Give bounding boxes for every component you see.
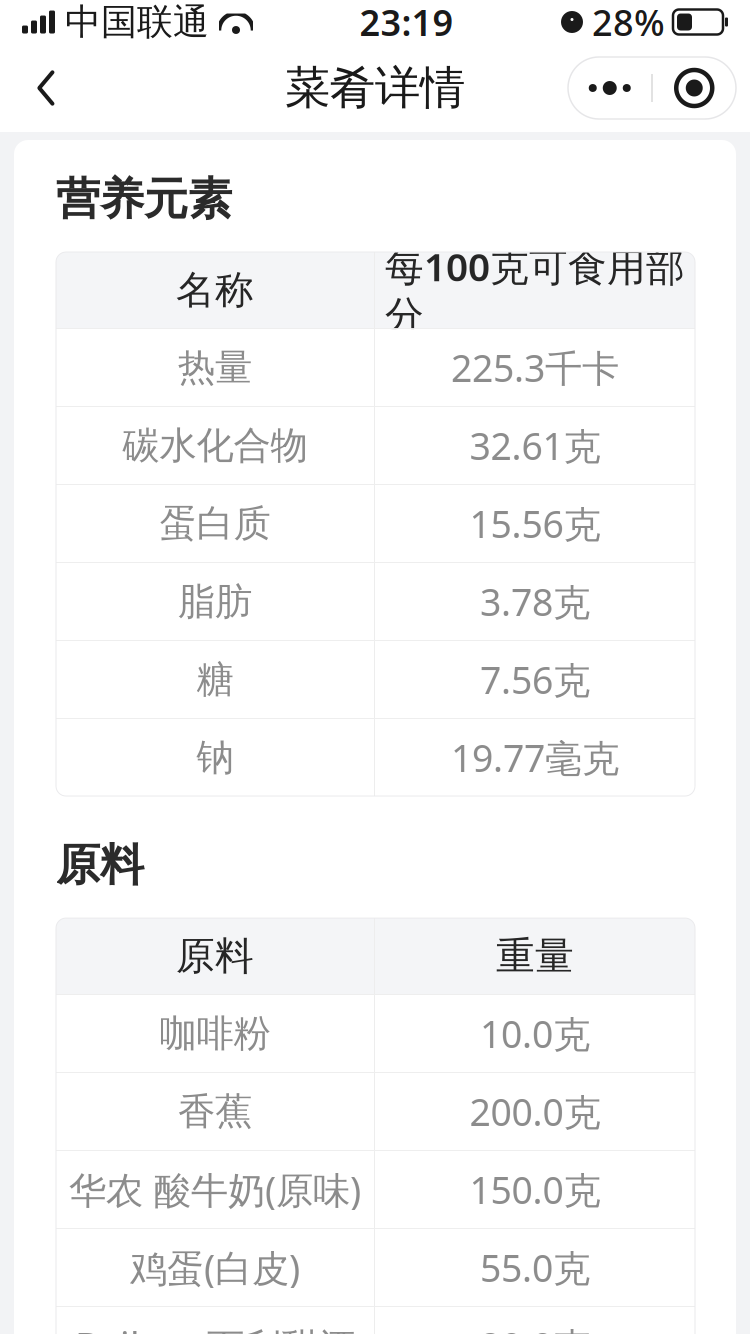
- staticText: 19.77毫克: [451, 733, 619, 782]
- staticText: 脂肪: [178, 579, 252, 624]
- staticText: 糖: [196, 657, 233, 702]
- staticText: 重量: [496, 932, 574, 980]
- staticText: 225.3千卡: [451, 343, 619, 392]
- staticText: 32.61克: [469, 421, 600, 470]
- staticText: 7.56克: [480, 655, 590, 704]
- staticText: 碳水化合物: [122, 423, 307, 468]
- staticText: 3.78克: [480, 577, 590, 626]
- staticText: 每100克可食用部分: [385, 241, 685, 339]
- button[interactable]: 更多: [568, 57, 651, 119]
- staticText: 23:19: [359, 0, 453, 46]
- staticText: 华农 酸牛奶(原味): [69, 1165, 361, 1214]
- staticText: 名称: [176, 266, 254, 314]
- staticText: 香蕉: [178, 1089, 252, 1135]
- staticText: 15.56克: [469, 499, 600, 548]
- staticText: 28%: [592, 0, 665, 46]
- staticText: Baileys 百利甜酒: [75, 1321, 355, 1334]
- staticText: 热量: [178, 345, 252, 390]
- staticText: 55.0克: [480, 1243, 590, 1292]
- staticText: 菜肴详情: [285, 60, 465, 116]
- staticText: 10.0克: [480, 1009, 590, 1058]
- staticText: 中国联通: [65, 0, 209, 44]
- staticText: 原料: [56, 838, 144, 892]
- staticText: 营养元素: [56, 172, 232, 226]
- staticText: 咖啡粉: [159, 1011, 270, 1057]
- button[interactable]: 关闭: [653, 57, 736, 119]
- staticText: 鸡蛋(白皮): [130, 1243, 300, 1292]
- staticText: 原料: [176, 932, 254, 980]
- staticText: 蛋白质: [159, 501, 270, 546]
- staticText: 钠: [196, 735, 233, 780]
- staticText: 200.0克: [469, 1087, 600, 1136]
- staticText: 20.0克: [480, 1321, 590, 1334]
- button[interactable]: 返回: [14, 56, 78, 120]
- staticText: 150.0克: [469, 1165, 600, 1214]
